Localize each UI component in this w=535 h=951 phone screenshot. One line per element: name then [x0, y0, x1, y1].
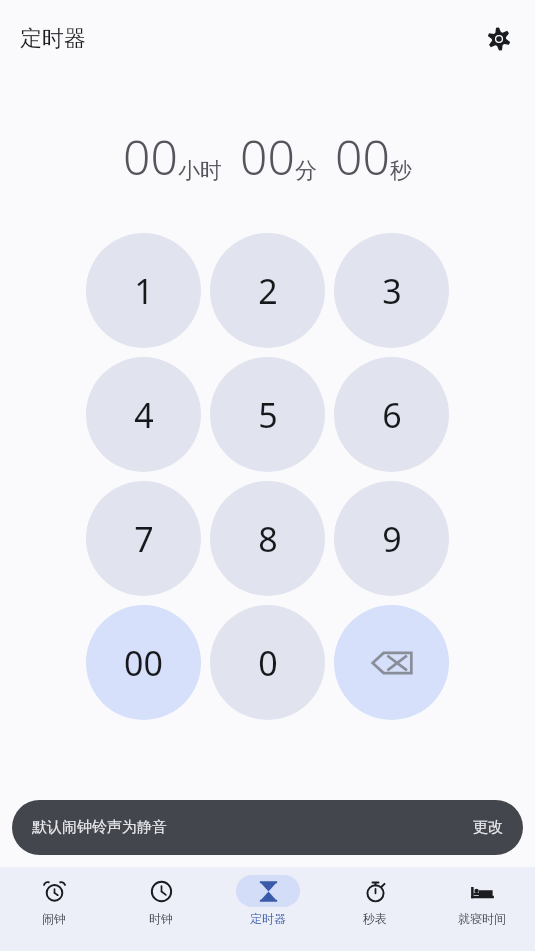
staticText: 00 [335, 124, 390, 189]
staticText: 秒表 [363, 911, 387, 926]
button[interactable]: 更改 [463, 812, 513, 843]
staticText: 8 [258, 516, 278, 562]
button[interactable]: 默认闹钟铃声为静音 [12, 800, 523, 855]
staticText: 默认闹钟铃声为静音 [32, 818, 167, 837]
button[interactable]: 00 [86, 605, 201, 720]
button[interactable]: Settings [477, 17, 521, 61]
staticText: 时钟 [149, 911, 173, 926]
button[interactable]: 8 [210, 481, 325, 596]
staticText: 小时 [178, 157, 222, 185]
staticText: 9 [382, 516, 402, 562]
staticText: 00 [240, 124, 295, 189]
staticText: 6 [382, 392, 402, 438]
button[interactable]: 9 [334, 481, 449, 596]
button[interactable]: 时钟 [107, 867, 214, 926]
staticText: 0 [258, 640, 278, 686]
staticText: 3 [382, 268, 402, 314]
staticText: 秒 [390, 157, 412, 185]
button[interactable]: 5 [210, 357, 325, 472]
button[interactable]: 2 [210, 233, 325, 348]
button[interactable]: 0 [210, 605, 325, 720]
staticText: 5 [258, 392, 278, 438]
button[interactable]: 定时器 [214, 867, 321, 926]
staticText: 1 [134, 268, 154, 314]
staticText: 就寝时间 [458, 911, 506, 926]
button[interactable]: 6 [334, 357, 449, 472]
staticText: 7 [134, 516, 154, 562]
staticText: 00 [124, 640, 163, 686]
button[interactable]: 7 [86, 481, 201, 596]
button[interactable]: 秒表 [321, 867, 428, 926]
button[interactable]: 3 [334, 233, 449, 348]
staticText: 分 [295, 157, 317, 185]
staticText: 定时器 [250, 911, 286, 926]
staticText: 更改 [473, 818, 503, 837]
staticText: 4 [134, 392, 154, 438]
staticText: 00 [123, 124, 178, 189]
button[interactable]: 1 [86, 233, 201, 348]
button[interactable]: 就寝时间 [428, 867, 535, 926]
staticText: 定时器 [20, 25, 86, 53]
staticText: 2 [258, 268, 278, 314]
button[interactable]: 闹钟 [0, 867, 107, 926]
button[interactable]: 4 [86, 357, 201, 472]
button[interactable]: Backspace [334, 605, 449, 720]
staticText: 闹钟 [42, 911, 66, 926]
